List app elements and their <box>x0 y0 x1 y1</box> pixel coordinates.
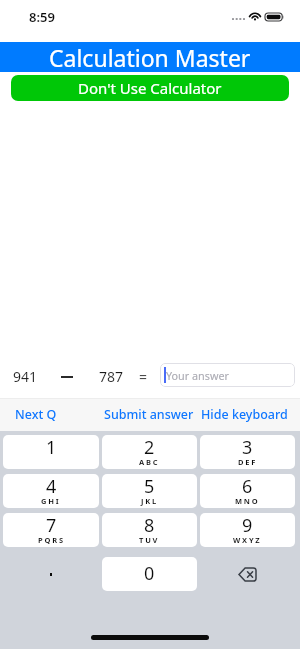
staticText: 7 <box>46 513 57 538</box>
staticText: Calculation Master <box>49 42 251 72</box>
button[interactable]: Next Q <box>15 406 57 423</box>
staticText: 787 <box>99 367 124 386</box>
button[interactable]: 4 <box>3 474 99 508</box>
button[interactable]: 0 <box>102 557 197 591</box>
button[interactable]: Don't Use Calculator <box>11 75 289 101</box>
staticText: 5 <box>144 474 155 499</box>
staticText: = <box>139 367 148 386</box>
button[interactable]: Submit answer <box>104 406 194 423</box>
staticText: JKL <box>141 496 159 506</box>
staticText: 3 <box>242 435 253 460</box>
button[interactable]: 9 <box>200 513 295 547</box>
staticText: GHI <box>41 496 61 506</box>
button[interactable]: 7 <box>3 513 99 547</box>
button[interactable]: Hide keyboard <box>201 406 288 423</box>
staticText: MNO <box>235 496 260 506</box>
staticText: Your answer <box>166 368 229 383</box>
staticText: ABC <box>139 457 160 467</box>
button[interactable]: 2 <box>102 435 197 469</box>
staticText: 1 <box>46 435 57 460</box>
staticText: TUV <box>139 535 160 545</box>
staticText: 941 <box>13 367 38 386</box>
button[interactable]: 8 <box>102 513 197 547</box>
button[interactable]: 3 <box>200 435 295 469</box>
staticText: WXYZ <box>233 535 262 545</box>
staticText: 2 <box>144 435 155 460</box>
staticText: Don't Use Calculator <box>78 78 222 98</box>
button[interactable]: 5 <box>102 474 197 508</box>
staticText: 8 <box>144 513 155 538</box>
button[interactable]: 1 <box>3 435 99 469</box>
staticText: 9 <box>242 513 253 538</box>
staticText: 6 <box>242 474 253 499</box>
button[interactable]: Your answer <box>160 363 295 387</box>
button[interactable]: Backspace <box>200 557 295 591</box>
staticText: 0 <box>144 561 155 586</box>
staticText: 8:59 <box>29 8 55 26</box>
staticText: DEF <box>238 457 258 467</box>
staticText: 4 <box>46 474 57 499</box>
button[interactable] <box>3 557 99 591</box>
staticText: PQRS <box>38 535 65 545</box>
button[interactable]: 6 <box>200 474 295 508</box>
